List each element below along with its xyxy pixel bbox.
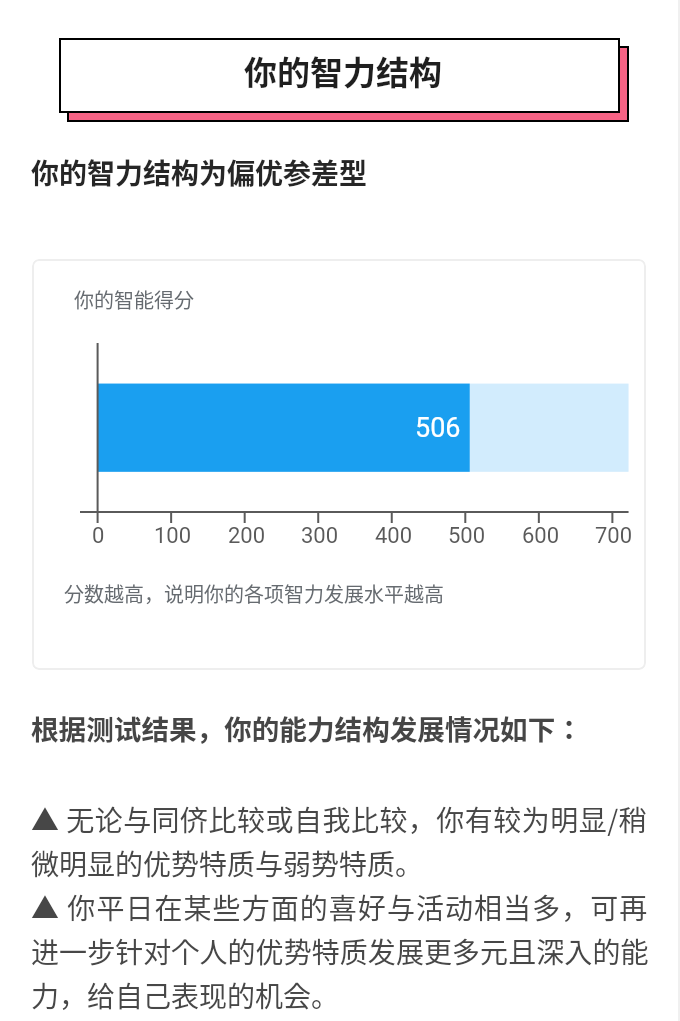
staticText: 100 xyxy=(154,523,192,549)
staticText: 600 xyxy=(522,523,560,549)
staticText: 根据测试结果，你的能力结构发展情况如下： xyxy=(31,708,583,748)
staticText: 你的智力结构为偏优参差型 xyxy=(31,152,368,193)
staticText: 力，给自己表现的机会。 xyxy=(31,975,340,1016)
staticText: 0 xyxy=(92,523,105,549)
staticText: 500 xyxy=(448,523,486,549)
staticText: 进一步针对个人的优势特质发展更多元且深入的能 xyxy=(31,931,649,972)
staticText: ▲ 你平日在某些方面的喜好与活动相当多，可再 xyxy=(31,887,649,928)
staticText: 300 xyxy=(301,523,339,549)
staticText: 700 xyxy=(595,523,633,549)
other: 智能得分 506 xyxy=(32,259,646,670)
staticText: 微明显的优势特质与弱势特质。 xyxy=(31,843,424,884)
staticText: ▲ 无论与同侪比较或自我比较，你有较为明显/稍 xyxy=(31,799,648,840)
staticText: 200 xyxy=(228,523,266,549)
staticText: 你的智力结构 xyxy=(244,47,442,95)
staticText: 你的智能得分 xyxy=(74,285,194,314)
staticText: 506 xyxy=(415,412,461,444)
staticText: 分数越高，说明你的各项智力发展水平越高 xyxy=(64,579,444,608)
staticText: 400 xyxy=(375,523,413,549)
button[interactable]: 你的智力结构 xyxy=(59,38,620,113)
button[interactable]: 你的智能得分 xyxy=(32,259,646,670)
